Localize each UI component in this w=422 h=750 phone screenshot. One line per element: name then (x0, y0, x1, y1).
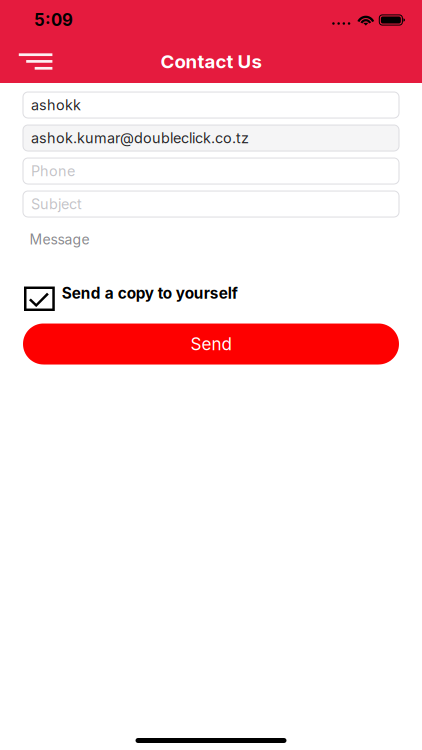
button[interactable]: Phone (23, 158, 399, 184)
staticText: Message (29, 231, 89, 248)
staticText: 5:09 (34, 10, 73, 30)
button[interactable]: Send (23, 323, 399, 364)
button[interactable]: ashokk (23, 92, 399, 118)
staticText: Subject (31, 195, 82, 213)
staticText: Phone (31, 162, 75, 180)
button[interactable]: Send a copy to yourself (24, 286, 238, 311)
staticText: Send (190, 334, 231, 354)
staticText: Send a copy to yourself (62, 284, 238, 303)
button[interactable]: ashok.kumar@doubleclick.co.tz (23, 125, 399, 151)
button[interactable]: Subject (23, 191, 399, 217)
staticText: ashok.kumar@doubleclick.co.tz (31, 129, 249, 147)
staticText: ashokk (31, 96, 81, 114)
button[interactable]: Menu (0, 43, 64, 80)
staticText: Contact Us (160, 50, 261, 73)
